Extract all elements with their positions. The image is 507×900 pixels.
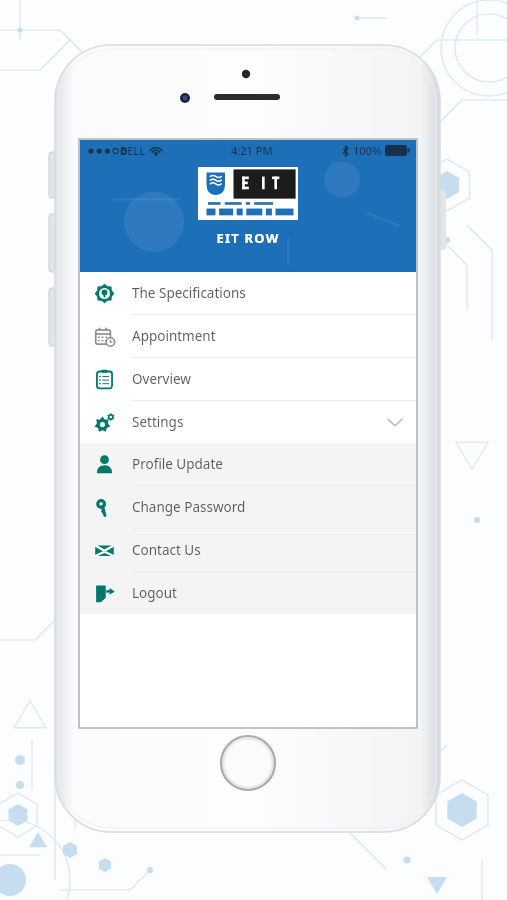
staticText: EIT ROW [80,229,416,247]
staticText: Change Password [132,498,246,516]
staticText: 4:21 PM [231,143,273,158]
staticText: Appointment [132,327,216,345]
button[interactable]: Overview [80,358,416,400]
staticText: BELL [120,143,146,158]
staticText: 100% [353,143,382,158]
staticText: Profile Update [132,455,223,473]
staticText: Contact Us [132,541,201,559]
button[interactable]: Profile Update [80,443,416,485]
button[interactable]: Logout [80,572,416,614]
button[interactable]: Settings [80,401,416,443]
button[interactable]: Change Password [80,486,416,528]
staticText: Overview [132,370,191,388]
button[interactable]: Contact Us [80,529,416,571]
button[interactable]: Appointment [80,315,416,357]
button[interactable]: The Specifications [80,272,416,314]
staticText: Settings [132,413,184,431]
staticText: Logout [132,584,177,602]
staticText: The Specifications [132,284,246,302]
